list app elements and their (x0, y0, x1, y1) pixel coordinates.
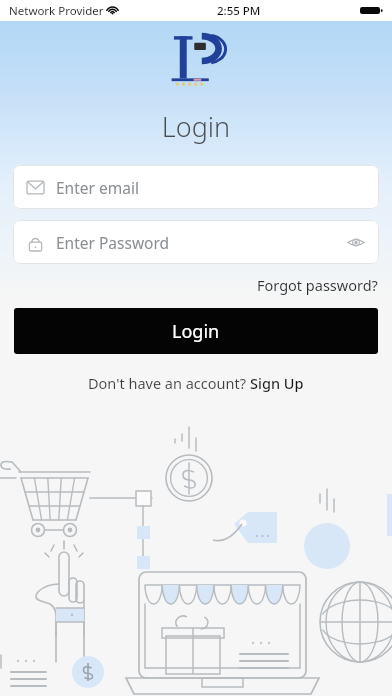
button[interactable]: Enter Password (13, 220, 379, 264)
staticText: 2:55 PM (217, 3, 261, 19)
staticText: Login (172, 319, 220, 344)
button[interactable]: Forgot password? (253, 270, 382, 300)
staticText: Login (0, 108, 392, 145)
button[interactable]: Sign Up (250, 373, 304, 393)
button[interactable]: Enter email (13, 165, 379, 209)
staticText: Don't have an account? (88, 373, 250, 393)
staticText: Enter email (56, 177, 139, 198)
staticText: Sign Up (250, 373, 304, 393)
button[interactable]: Show password (347, 236, 365, 249)
button[interactable]: Login (14, 308, 378, 354)
staticText: Forgot password? (257, 275, 378, 295)
staticText: Enter Password (56, 232, 170, 253)
staticText: Network Provider (9, 3, 104, 19)
